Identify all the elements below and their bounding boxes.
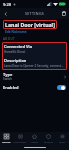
button[interactable]: Enabled [0,83,69,92]
button[interactable]: Home [27,132,41,145]
staticText: Lanai Door [virtual] [5,21,55,28]
staticText: HomeKit Direct [4,50,26,54]
button[interactable]: Back [0,8,11,19]
button[interactable]: Delete [58,8,69,19]
staticText: Enabled [3,85,57,90]
staticText: Automations [13,140,27,143]
button[interactable]: Description [2,56,67,70]
staticText: SETTINGS [25,11,45,16]
staticText: 9:28 [3,2,11,7]
button[interactable]: Automations [13,132,27,145]
staticText: Lanai Door is Opener 2 Security, connect… [4,64,65,68]
button[interactable]: More [55,132,69,145]
staticText: More [59,140,65,143]
staticText: Type [3,72,13,77]
button[interactable]: Type [0,70,69,83]
staticText: Switch [3,77,13,81]
staticText: Security [44,140,53,143]
button[interactable]: Connected Via [2,42,67,56]
staticText: Description [4,58,27,63]
staticText: Devices [2,140,11,143]
button[interactable]: Devices [0,132,13,145]
staticText: Connected Via [4,44,32,49]
staticText: Home [31,140,38,143]
staticText: ABOUT [3,37,16,41]
button[interactable]: Edit Nickname [5,30,27,34]
button[interactable]: Security [41,132,55,145]
